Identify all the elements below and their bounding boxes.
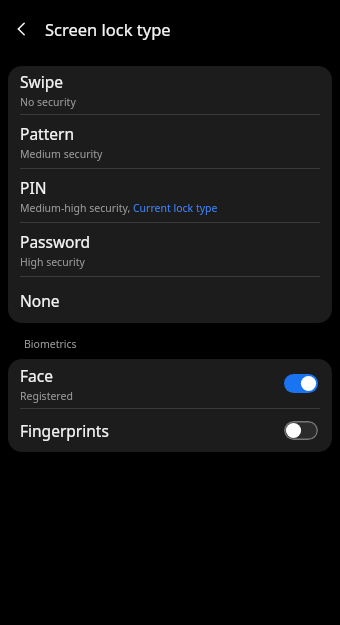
button[interactable]: Swipe	[8, 66, 332, 114]
staticText: PIN	[20, 177, 47, 198]
button[interactable]: Password	[8, 223, 332, 276]
staticText: Medium-high security, Current lock type	[20, 201, 218, 215]
button[interactable]: None	[8, 277, 332, 323]
staticText: Screen lock type	[45, 18, 171, 40]
staticText: Fingerprints	[20, 420, 109, 441]
button[interactable]: Fingerprints	[8, 409, 332, 452]
button[interactable]: Face unlock toggle	[284, 374, 318, 393]
staticText: Medium security	[20, 147, 103, 161]
staticText: None	[20, 290, 60, 311]
button[interactable]: Back	[0, 7, 44, 51]
staticText: High security	[20, 255, 85, 269]
staticText: Registered	[20, 389, 73, 403]
button[interactable]: PIN	[8, 169, 332, 222]
button[interactable]: Face	[8, 359, 332, 408]
staticText: No security	[20, 95, 76, 109]
button[interactable]: Fingerprints toggle	[284, 421, 318, 440]
staticText: Swipe	[20, 71, 63, 92]
staticText: Face	[20, 365, 53, 386]
staticText: Password	[20, 231, 91, 252]
button[interactable]: Pattern	[8, 115, 332, 168]
staticText: Biometrics	[24, 337, 77, 351]
staticText: Pattern	[20, 123, 74, 144]
